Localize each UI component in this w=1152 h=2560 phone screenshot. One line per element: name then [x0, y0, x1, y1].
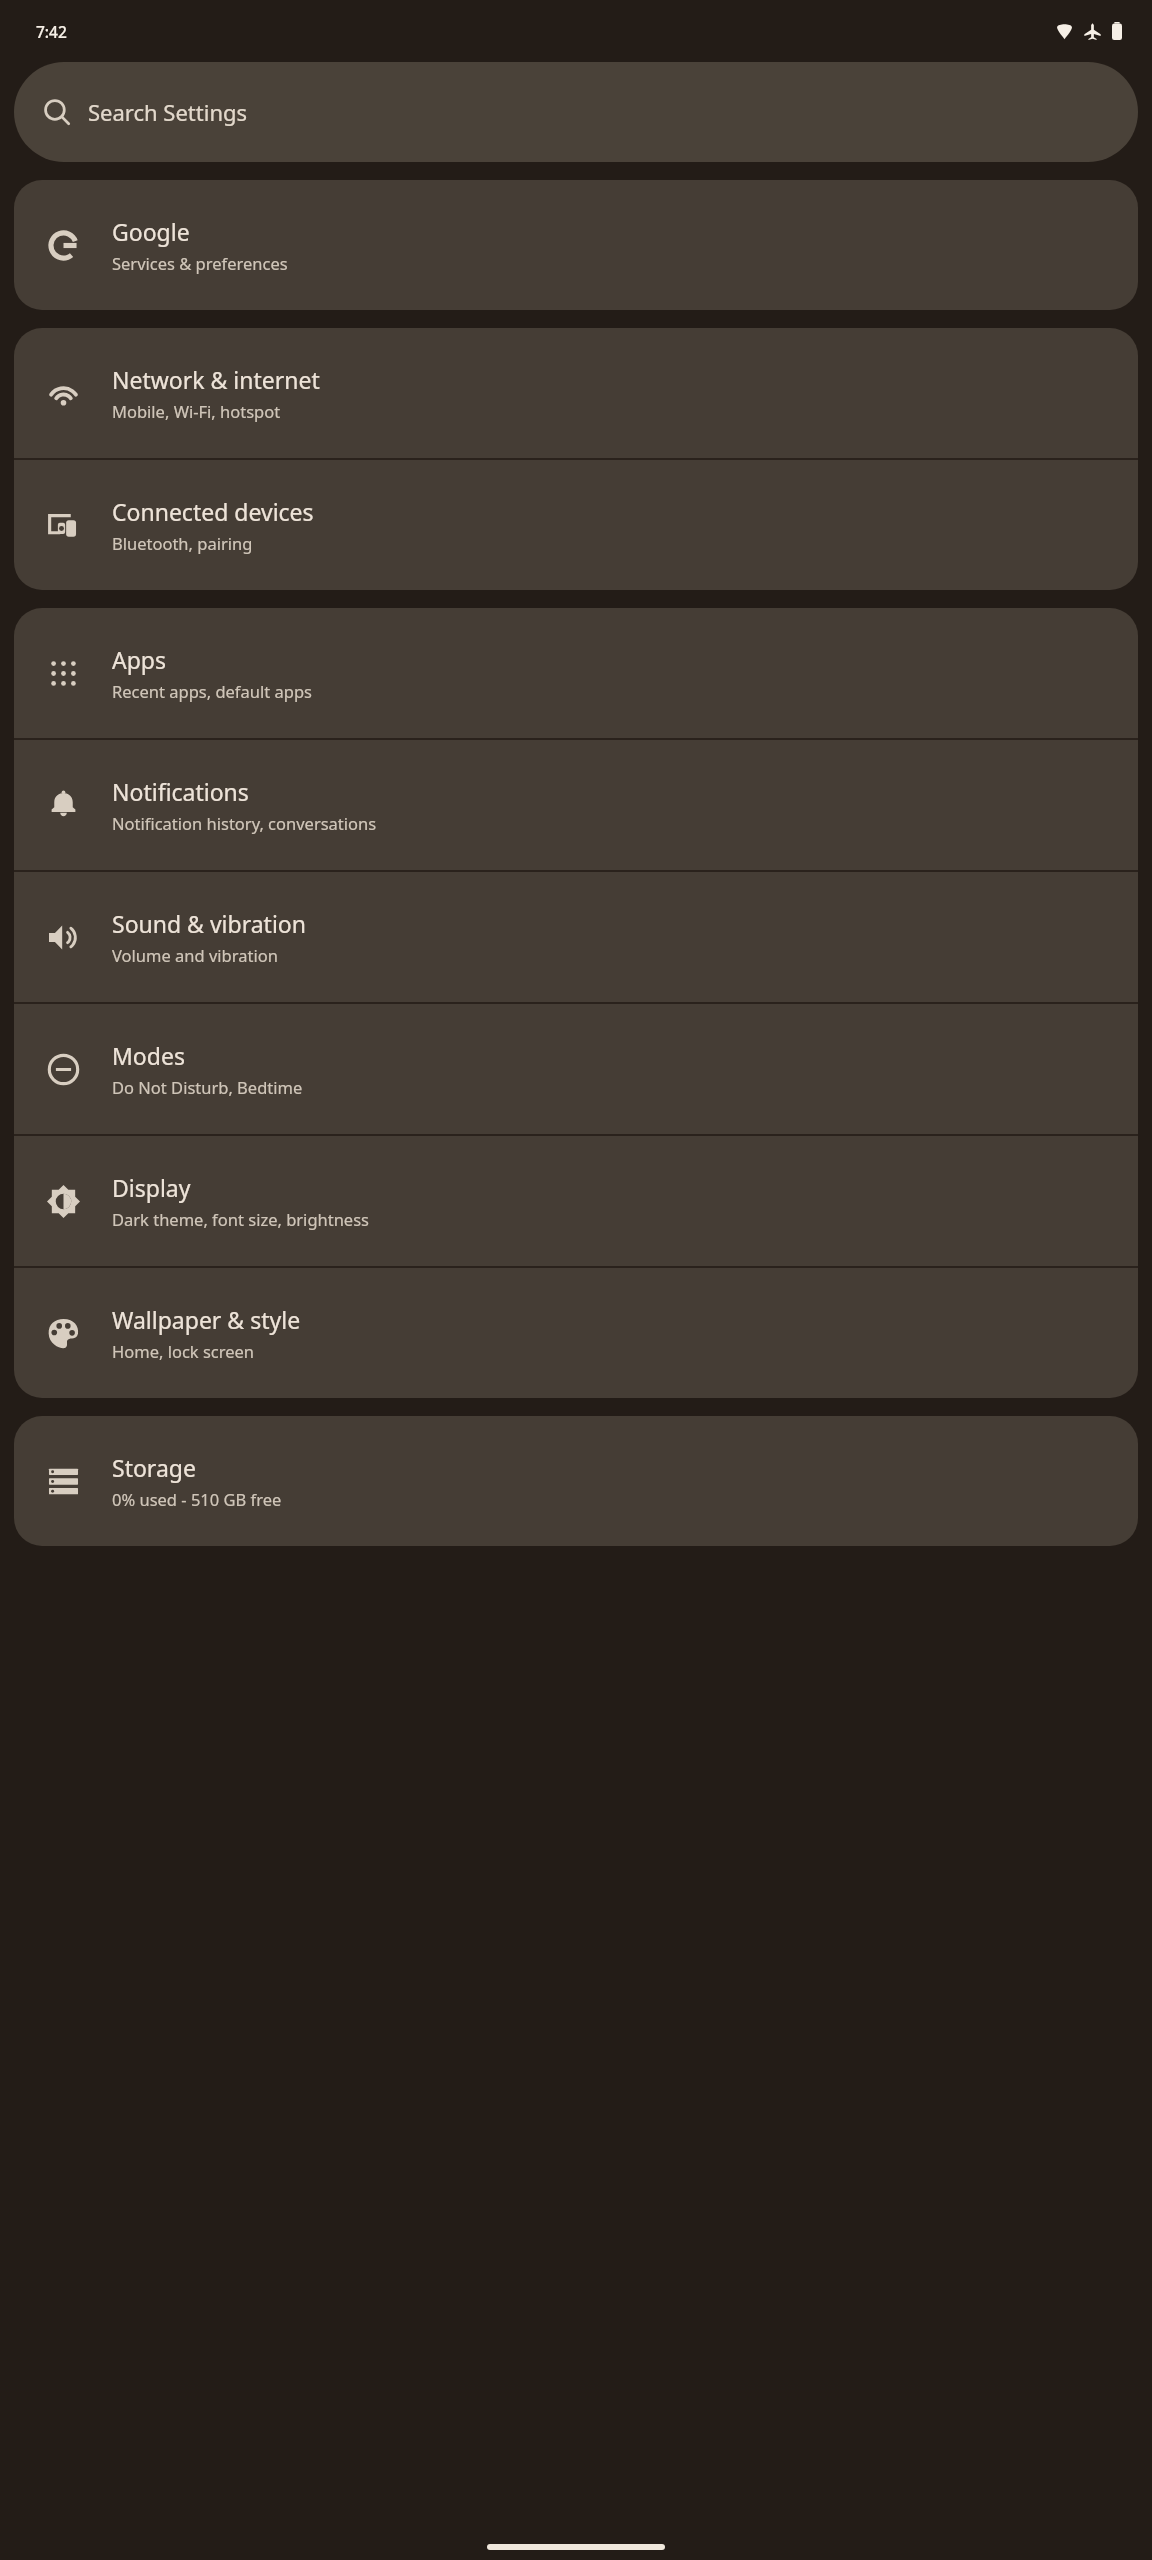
- staticText: Apps: [112, 644, 167, 675]
- button[interactable]: Display: [14, 1136, 1138, 1266]
- staticText: Sound & vibration: [112, 908, 306, 939]
- button[interactable]: Search Settings: [14, 62, 1138, 162]
- button[interactable]: Connected devices: [14, 460, 1138, 590]
- staticText: Modes: [112, 1040, 185, 1071]
- staticText: Services & preferences: [112, 252, 288, 274]
- staticText: Wallpaper & style: [112, 1304, 301, 1335]
- button[interactable]: Sound & vibration: [14, 872, 1138, 1002]
- staticText: Notifications: [112, 776, 249, 807]
- staticText: Do Not Disturb, Bedtime: [112, 1076, 303, 1098]
- staticText: Home, lock screen: [112, 1340, 255, 1362]
- button[interactable]: Google: [14, 180, 1138, 310]
- staticText: Recent apps, default apps: [112, 680, 312, 702]
- button[interactable]: Modes: [14, 1004, 1138, 1134]
- staticText: Storage: [112, 1452, 196, 1483]
- staticText: Notification history, conversations: [112, 812, 377, 834]
- staticText: Google: [112, 216, 190, 247]
- staticText: Network & internet: [112, 364, 320, 395]
- staticText: 0% used - 510 GB free: [112, 1488, 282, 1510]
- staticText: Display: [112, 1172, 191, 1203]
- staticText: Search Settings: [88, 97, 248, 127]
- staticText: Connected devices: [112, 496, 314, 527]
- button[interactable]: Apps: [14, 608, 1138, 738]
- staticText: Bluetooth, pairing: [112, 532, 253, 554]
- button[interactable]: Storage: [14, 1416, 1138, 1546]
- button[interactable]: Wallpaper & style: [14, 1268, 1138, 1398]
- staticText: 7:42: [36, 21, 67, 42]
- button[interactable]: Network & internet: [14, 328, 1138, 458]
- staticText: Mobile, Wi-Fi, hotspot: [112, 400, 281, 422]
- staticText: Dark theme, font size, brightness: [112, 1208, 369, 1230]
- button[interactable]: Notifications: [14, 740, 1138, 870]
- staticText: Volume and vibration: [112, 944, 278, 966]
